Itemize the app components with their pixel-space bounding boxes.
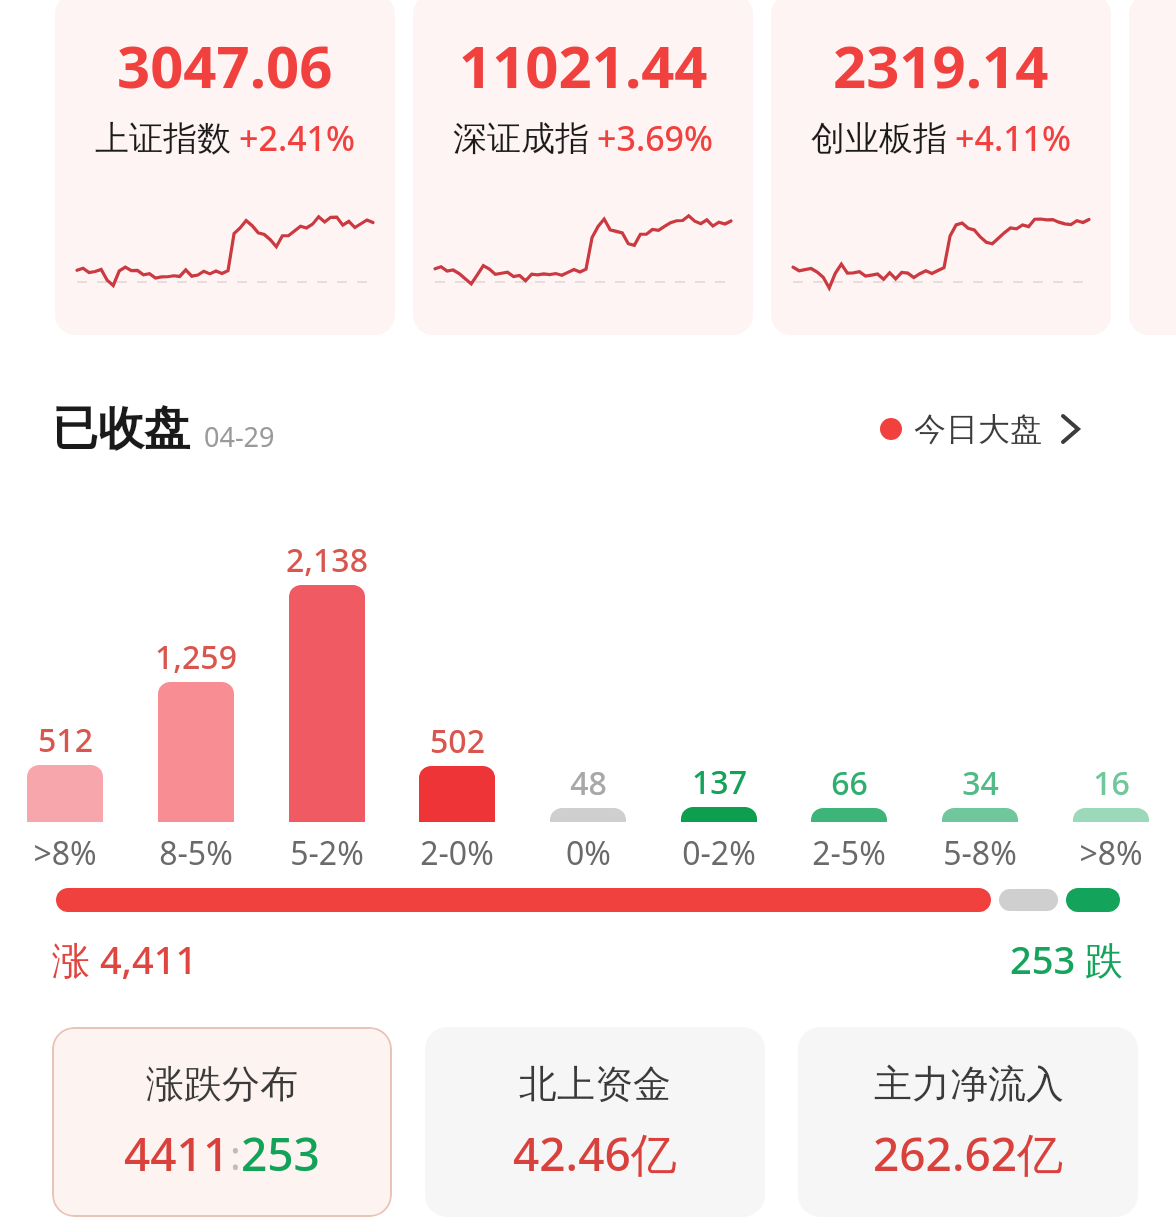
button[interactable]: 2319.14 (771, 0, 1111, 335)
staticText: 1,259 (155, 635, 237, 679)
staticText: 深证成指 (453, 117, 589, 160)
staticText: 16 (1093, 761, 1130, 805)
button[interactable] (811, 808, 887, 822)
button[interactable]: 3047.06 (55, 0, 395, 335)
staticText: 5-2% (290, 831, 364, 875)
button[interactable] (942, 808, 1018, 822)
button[interactable]: 11021.44 (413, 0, 753, 335)
button[interactable] (27, 765, 103, 822)
staticText: 3047.06 (117, 26, 333, 105)
staticText: 已收盘 (52, 400, 190, 458)
staticText: 4411 (124, 1122, 230, 1185)
staticText: 0-2% (682, 831, 756, 875)
staticText: 今日大盘 (914, 409, 1042, 449)
button[interactable] (550, 808, 626, 822)
staticText: 创业板指 (811, 117, 947, 160)
staticText: 502 (430, 719, 485, 763)
staticText: 2,138 (286, 538, 368, 582)
staticText: 2319.14 (833, 26, 1049, 105)
staticText: 262.62亿 (873, 1122, 1064, 1185)
staticText: 04-29 (204, 418, 275, 455)
staticText: : (230, 1127, 241, 1181)
button[interactable]: 今日大盘 (880, 400, 1080, 458)
staticText: 42.46亿 (513, 1122, 677, 1185)
staticText: 2-5% (812, 831, 886, 875)
button[interactable]: 北上资金 (425, 1027, 765, 1217)
staticText: 2-0% (420, 831, 494, 875)
staticText: 253 跌 (1010, 933, 1124, 985)
button[interactable] (1073, 808, 1149, 822)
button[interactable]: 主力净流入 (798, 1027, 1138, 1217)
staticText: 137 (692, 760, 747, 804)
button[interactable] (289, 585, 365, 822)
staticText: 0% (566, 831, 611, 875)
staticText: 34 (962, 761, 999, 805)
staticText: +2.41% (239, 115, 356, 161)
staticText: 48 (570, 761, 607, 805)
staticText: +3.69% (597, 115, 714, 161)
staticText: 8-5% (159, 831, 233, 875)
staticText: 上证指数 (95, 117, 231, 160)
staticText: >8% (33, 831, 97, 875)
staticText: 主力净流入 (874, 1060, 1064, 1108)
staticText: >8% (1079, 831, 1143, 875)
staticText: 涨跌分布 (146, 1060, 298, 1108)
staticText: 66 (831, 761, 868, 805)
button[interactable]: 涨跌分布 (52, 1027, 392, 1217)
staticText: 北上资金 (519, 1060, 671, 1108)
button[interactable] (158, 682, 234, 822)
staticText: 涨 4,411 (52, 933, 198, 985)
button[interactable] (681, 807, 757, 822)
staticText: +4.11% (955, 115, 1072, 161)
button[interactable] (419, 766, 495, 822)
staticText: 11021.44 (459, 26, 708, 105)
staticText: 512 (38, 718, 93, 762)
staticText: 253 (241, 1122, 320, 1185)
staticText: 5-8% (943, 831, 1017, 875)
